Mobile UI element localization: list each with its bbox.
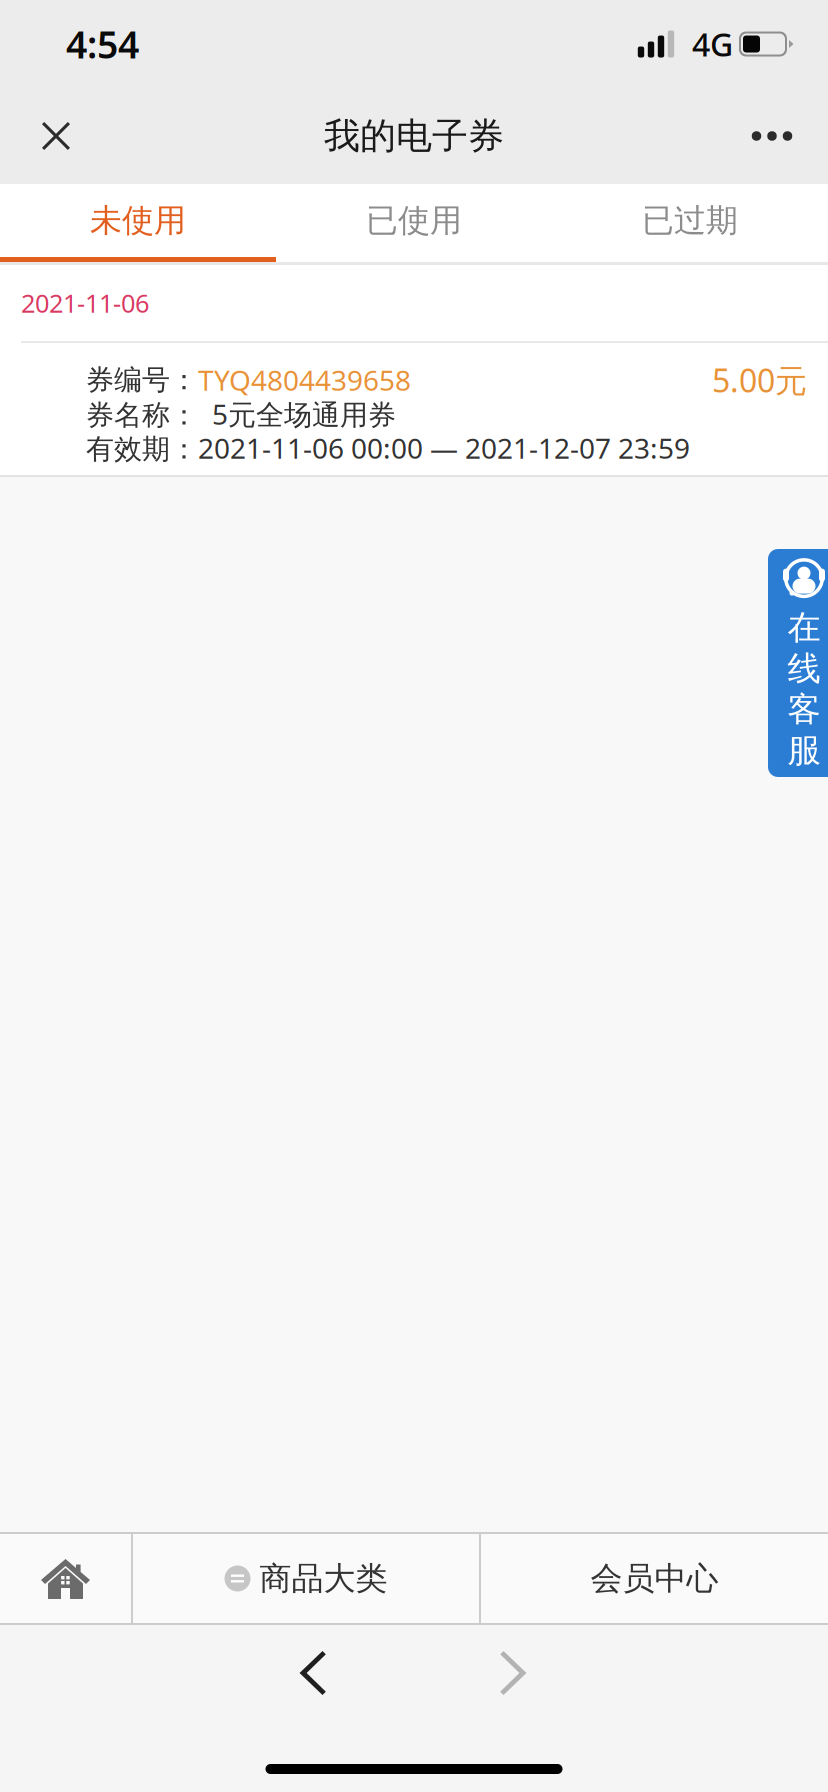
staticText: 我的电子券 — [324, 114, 504, 158]
staticText: 未使用 — [90, 201, 186, 240]
staticText: 4G — [692, 23, 733, 65]
button[interactable]: 商品大类 — [133, 1534, 479, 1623]
staticText: 商品大类 — [259, 1559, 387, 1598]
button[interactable]: 在线客服 — [756, 549, 828, 777]
staticText: 5.00元 — [712, 359, 807, 401]
button[interactable]: 首页 — [0, 1534, 131, 1623]
button[interactable]: 已过期 — [552, 184, 828, 262]
staticText: 2021-11-06 — [21, 286, 149, 320]
staticText: 券编号： — [86, 363, 198, 397]
button[interactable]: 已使用 — [276, 184, 552, 262]
staticText: 4:54 — [66, 19, 139, 69]
staticText: TYQ4804439658 — [198, 361, 411, 399]
staticText: 券名称： 5元全场通用券 — [86, 395, 396, 433]
button[interactable]: 会员中心 — [481, 1534, 828, 1623]
staticText: 客 — [787, 689, 820, 730]
staticText: 在 — [787, 607, 820, 648]
staticText: 服 — [787, 730, 820, 771]
button[interactable]: 前进 — [474, 1625, 560, 1721]
staticText: 已使用 — [366, 201, 462, 240]
staticText: 会员中心 — [590, 1559, 718, 1598]
button[interactable]: 未使用 — [0, 184, 276, 262]
staticText: 已过期 — [642, 201, 738, 240]
staticText: 线 — [787, 648, 820, 689]
staticText: 有效期：2021-11-06 00:00 — 2021-12-07 23:59 — [86, 429, 690, 467]
button[interactable]: 后退 — [270, 1625, 356, 1721]
button[interactable]: 关闭 — [0, 88, 112, 184]
button[interactable]: 更多 — [716, 88, 828, 184]
